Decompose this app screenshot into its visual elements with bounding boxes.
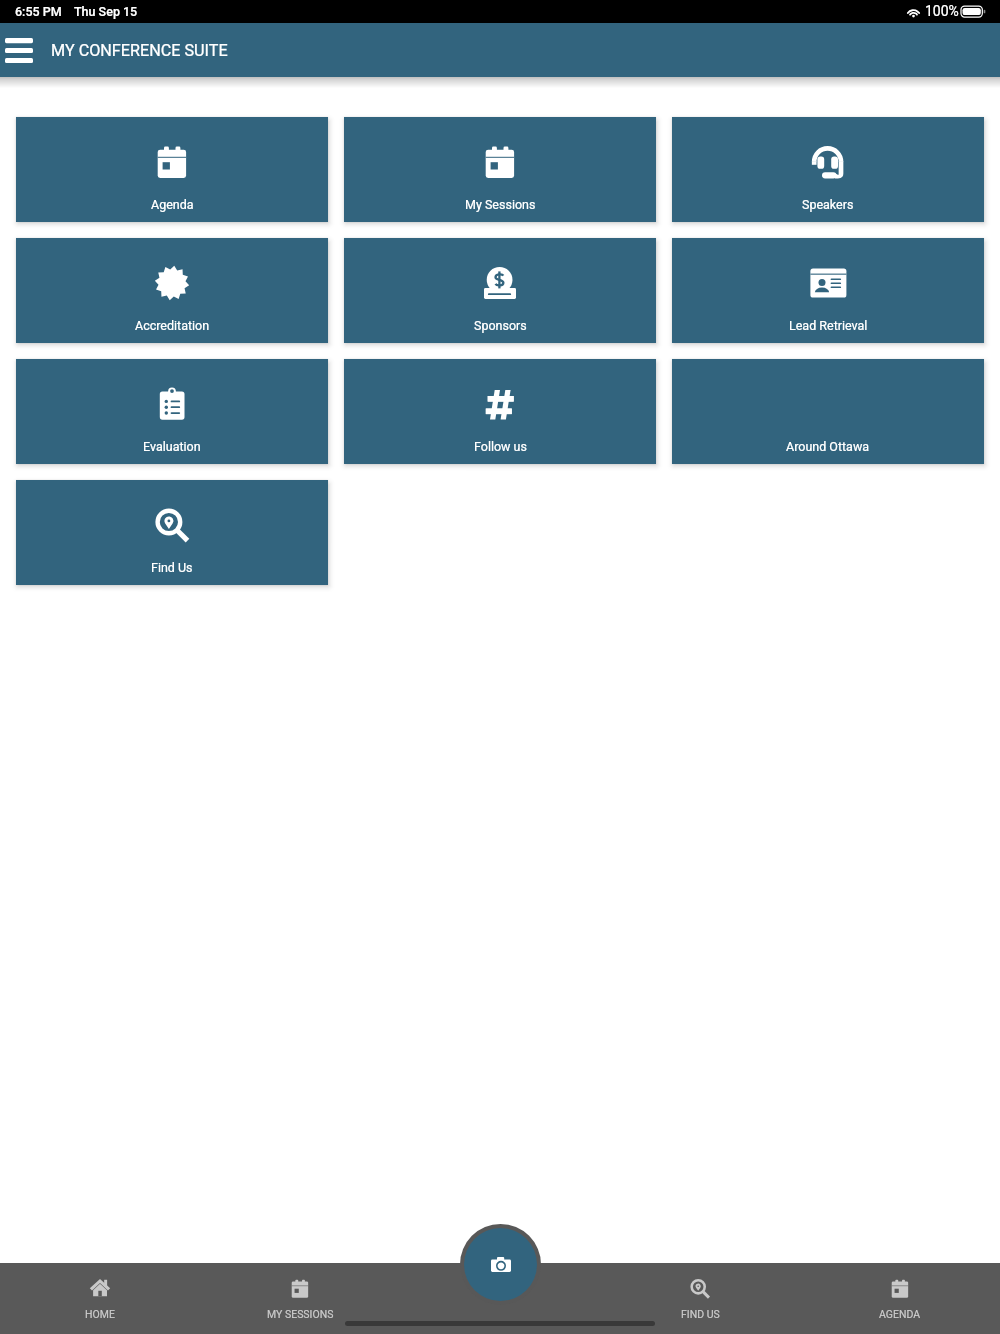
staticText: Around Ottawa: [786, 439, 870, 454]
staticText: Follow us: [474, 439, 527, 454]
staticText: Accreditation: [135, 318, 210, 333]
button[interactable]: AGENDA: [800, 1263, 1000, 1334]
button[interactable]: Evaluation: [16, 359, 328, 464]
button[interactable]: My Sessions: [344, 117, 656, 222]
staticText: Sponsors: [474, 318, 527, 333]
staticText: MY CONFERENCE SUITE: [51, 41, 228, 60]
staticText: AGENDA: [879, 1308, 921, 1320]
staticText: 100%: [925, 3, 959, 19]
button[interactable]: Speakers: [672, 117, 984, 222]
button[interactable]: MY SESSIONS: [200, 1263, 400, 1334]
staticText: Find Us: [151, 560, 193, 575]
button[interactable]: Accreditation: [16, 238, 328, 343]
staticText: My Sessions: [465, 197, 536, 212]
button[interactable]: Agenda: [16, 117, 328, 222]
staticText: HOME: [85, 1308, 115, 1320]
button[interactable]: HOME: [0, 1263, 200, 1334]
button[interactable]: Find Us: [16, 480, 328, 585]
staticText: Agenda: [151, 197, 194, 212]
staticText: FIND US: [681, 1308, 720, 1320]
staticText: 6:55 PM: [15, 4, 62, 19]
staticText: Thu Sep 15: [74, 4, 138, 19]
staticText: Speakers: [802, 197, 854, 212]
staticText: Lead Retrieval: [789, 318, 868, 333]
button[interactable]: Sponsors: [344, 238, 656, 343]
button[interactable]: Follow us: [344, 359, 656, 464]
button[interactable]: Take a photo: [460, 1224, 541, 1305]
button[interactable]: Lead Retrieval: [672, 238, 984, 343]
button[interactable]: Around Ottawa: [672, 359, 984, 464]
staticText: Evaluation: [143, 439, 201, 454]
button[interactable]: Open navigation menu: [5, 38, 33, 63]
staticText: MY SESSIONS: [267, 1308, 334, 1320]
button[interactable]: FIND US: [600, 1263, 800, 1334]
